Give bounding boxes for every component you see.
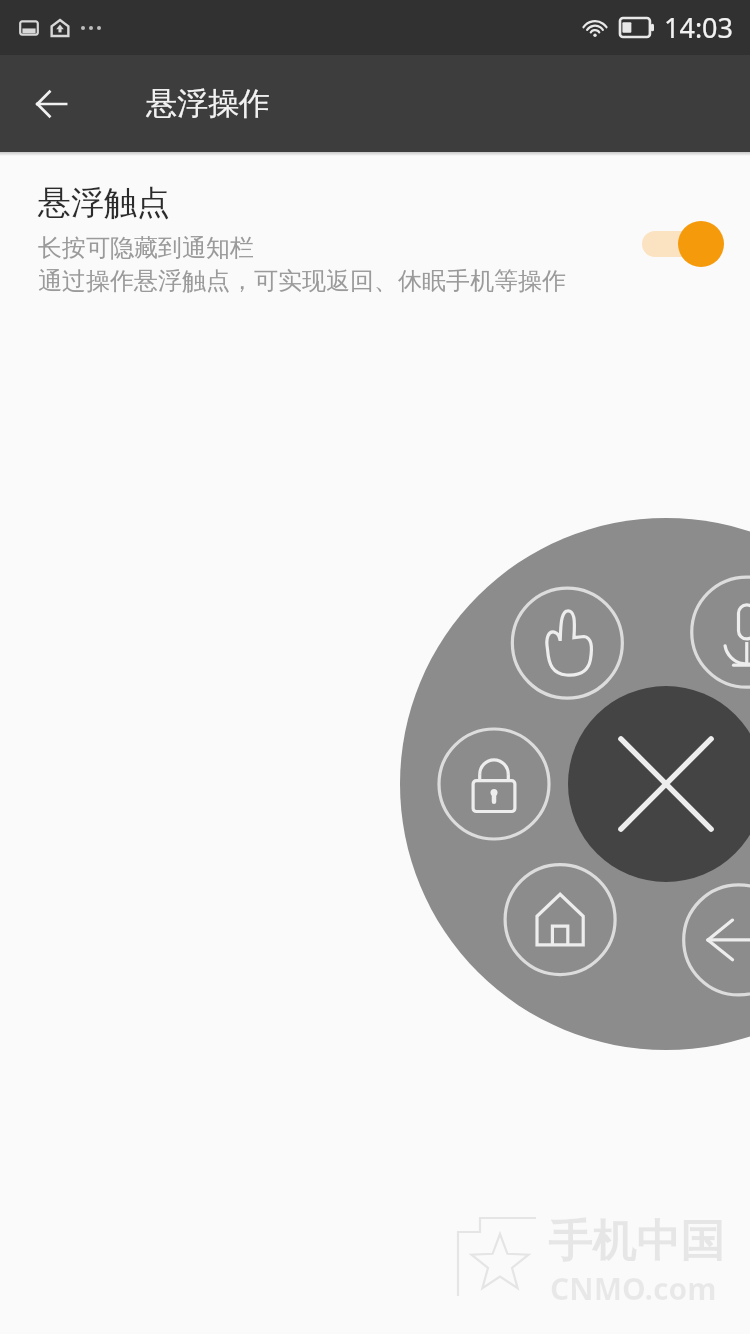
button[interactable]: Toggle floating touch [640,218,724,270]
staticText: CNMO.com [550,1268,717,1306]
button[interactable]: Back [20,73,82,135]
staticText: 长按可隐藏到通知栏 [38,233,254,263]
other: Floating touch menu [0,0,750,1334]
staticText: 通过操作悬浮触点，可实现返回、休眠手机等操作 [38,266,566,296]
button[interactable]: 悬浮触点 [0,170,750,308]
staticText: 悬浮触点 [38,182,170,224]
staticText: 14:03 [664,9,734,46]
staticText: 悬浮操作 [146,84,270,123]
staticText: 手机中国 [548,1214,724,1269]
